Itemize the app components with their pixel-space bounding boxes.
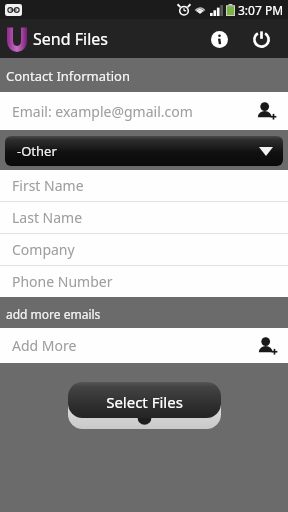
button[interactable]: Info bbox=[202, 22, 236, 56]
staticText: Contact Information bbox=[6, 67, 130, 85]
staticText: First Name bbox=[12, 176, 84, 195]
button[interactable]: Add More bbox=[0, 328, 288, 363]
button[interactable]: -Other bbox=[5, 136, 283, 166]
staticText: Send Files bbox=[33, 28, 108, 50]
button[interactable]: Select Files bbox=[68, 382, 221, 428]
staticText: 3:07 PM bbox=[238, 2, 284, 18]
staticText: -Other bbox=[17, 142, 57, 160]
button[interactable]: Email: example@gmail.com bbox=[0, 92, 288, 130]
button[interactable]: Add email from contacts bbox=[252, 331, 282, 361]
staticText: Select Files bbox=[68, 392, 221, 412]
staticText: Email: example@gmail.com bbox=[12, 102, 193, 121]
staticText: Company bbox=[12, 240, 75, 259]
button[interactable]: Power off bbox=[244, 22, 278, 56]
button[interactable]: Phone Number bbox=[0, 266, 288, 297]
staticText: Add More bbox=[12, 336, 77, 355]
button[interactable]: First Name bbox=[0, 170, 288, 201]
button[interactable]: Pick contact bbox=[250, 95, 282, 127]
staticText: Last Name bbox=[12, 208, 83, 227]
staticText: add more emails bbox=[6, 306, 101, 322]
staticText: Phone Number bbox=[12, 272, 113, 291]
button[interactable]: Company bbox=[0, 234, 288, 265]
button[interactable]: Last Name bbox=[0, 202, 288, 233]
